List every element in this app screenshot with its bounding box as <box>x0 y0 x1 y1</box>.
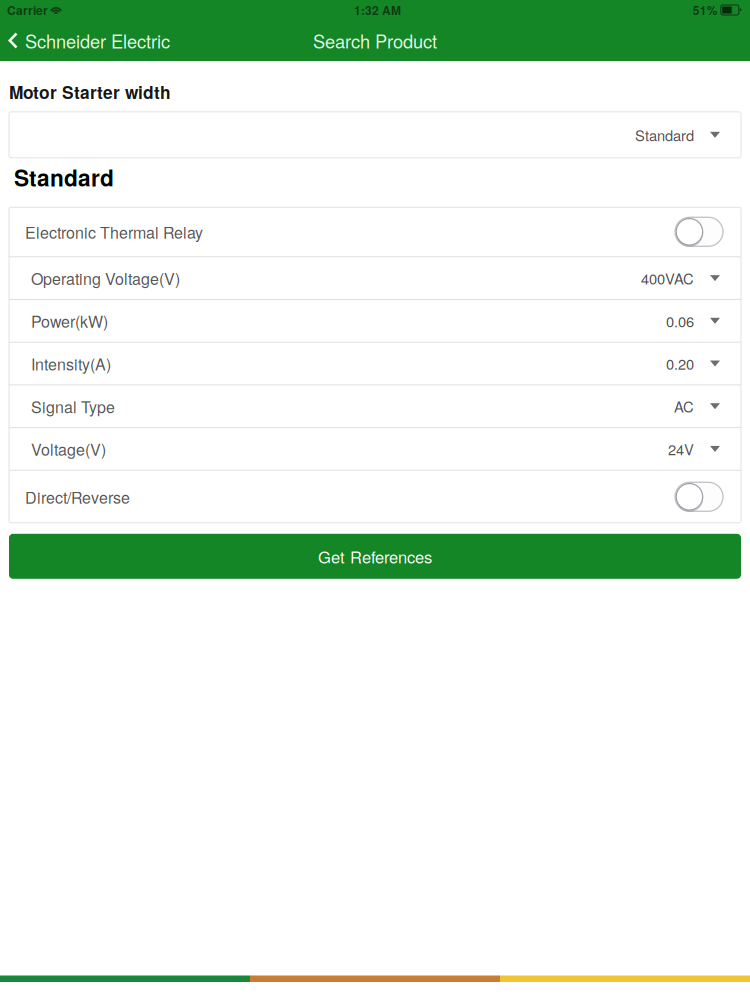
staticText: Power(kW) <box>31 309 108 332</box>
staticText: 51% <box>693 1 718 19</box>
staticText: Motor Starter width <box>9 79 171 104</box>
button[interactable]: Voltage(V) <box>9 428 741 470</box>
button[interactable]: Power(kW) <box>9 300 741 342</box>
button[interactable]: Signal Type <box>9 385 741 427</box>
staticText: Standard <box>635 124 694 145</box>
staticText: Direct/Reverse <box>25 485 130 508</box>
button[interactable]: Operating Voltage(V) <box>9 257 741 299</box>
staticText: Get References <box>318 544 432 568</box>
staticText: AC <box>674 396 694 417</box>
staticText: Operating Voltage(V) <box>31 267 180 290</box>
staticText: 0.06 <box>666 310 694 331</box>
button[interactable]: Electronic Thermal Relay <box>675 217 723 246</box>
button[interactable]: Intensity(A) <box>9 343 741 384</box>
staticText: 1:32 AM <box>354 1 401 19</box>
staticText: Intensity(A) <box>31 352 111 375</box>
staticText: Standard <box>14 161 114 193</box>
button[interactable]: Direct/Reverse <box>675 482 723 511</box>
staticText: 24V <box>668 438 694 459</box>
staticText: 0.20 <box>666 353 694 374</box>
staticText: Electronic Thermal Relay <box>25 220 203 243</box>
button[interactable]: Get References <box>9 534 741 579</box>
staticText: Carrier <box>7 1 48 19</box>
staticText: 400VAC <box>641 268 694 289</box>
staticText: Signal Type <box>31 395 115 418</box>
button[interactable]: Standard <box>9 112 741 158</box>
button[interactable]: Schneider Electric <box>0 20 170 61</box>
staticText: Search Product <box>313 27 437 54</box>
staticText: Schneider Electric <box>25 27 170 54</box>
staticText: Voltage(V) <box>31 437 106 460</box>
